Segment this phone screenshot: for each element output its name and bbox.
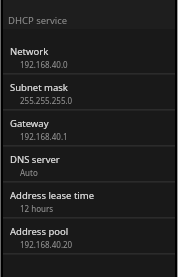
staticText: Gateway — [10, 117, 49, 130]
staticText: Address lease time — [10, 189, 95, 202]
staticText: DHCP service — [8, 14, 68, 27]
staticText: DNS server — [10, 153, 60, 166]
staticText: Address pool — [10, 225, 69, 238]
button[interactable]: Gateway — [2, 110, 175, 146]
button[interactable]: Subnet mask — [2, 74, 175, 110]
staticText: 255.255.255.0 — [20, 95, 73, 106]
button[interactable]: Network — [2, 38, 175, 74]
button[interactable]: Address lease time — [2, 182, 175, 218]
staticText: 192.168.40.1 — [20, 131, 68, 142]
staticText: 192.168.40.20 — [20, 239, 73, 250]
button[interactable]: Address pool — [2, 218, 175, 254]
button[interactable]: DNS server — [2, 146, 175, 182]
staticText: Auto — [20, 167, 38, 178]
staticText: Subnet mask — [10, 81, 68, 94]
staticText: 192.168.40.0 — [20, 59, 68, 70]
staticText: 12 hours — [20, 203, 54, 214]
staticText: Network — [10, 45, 49, 58]
